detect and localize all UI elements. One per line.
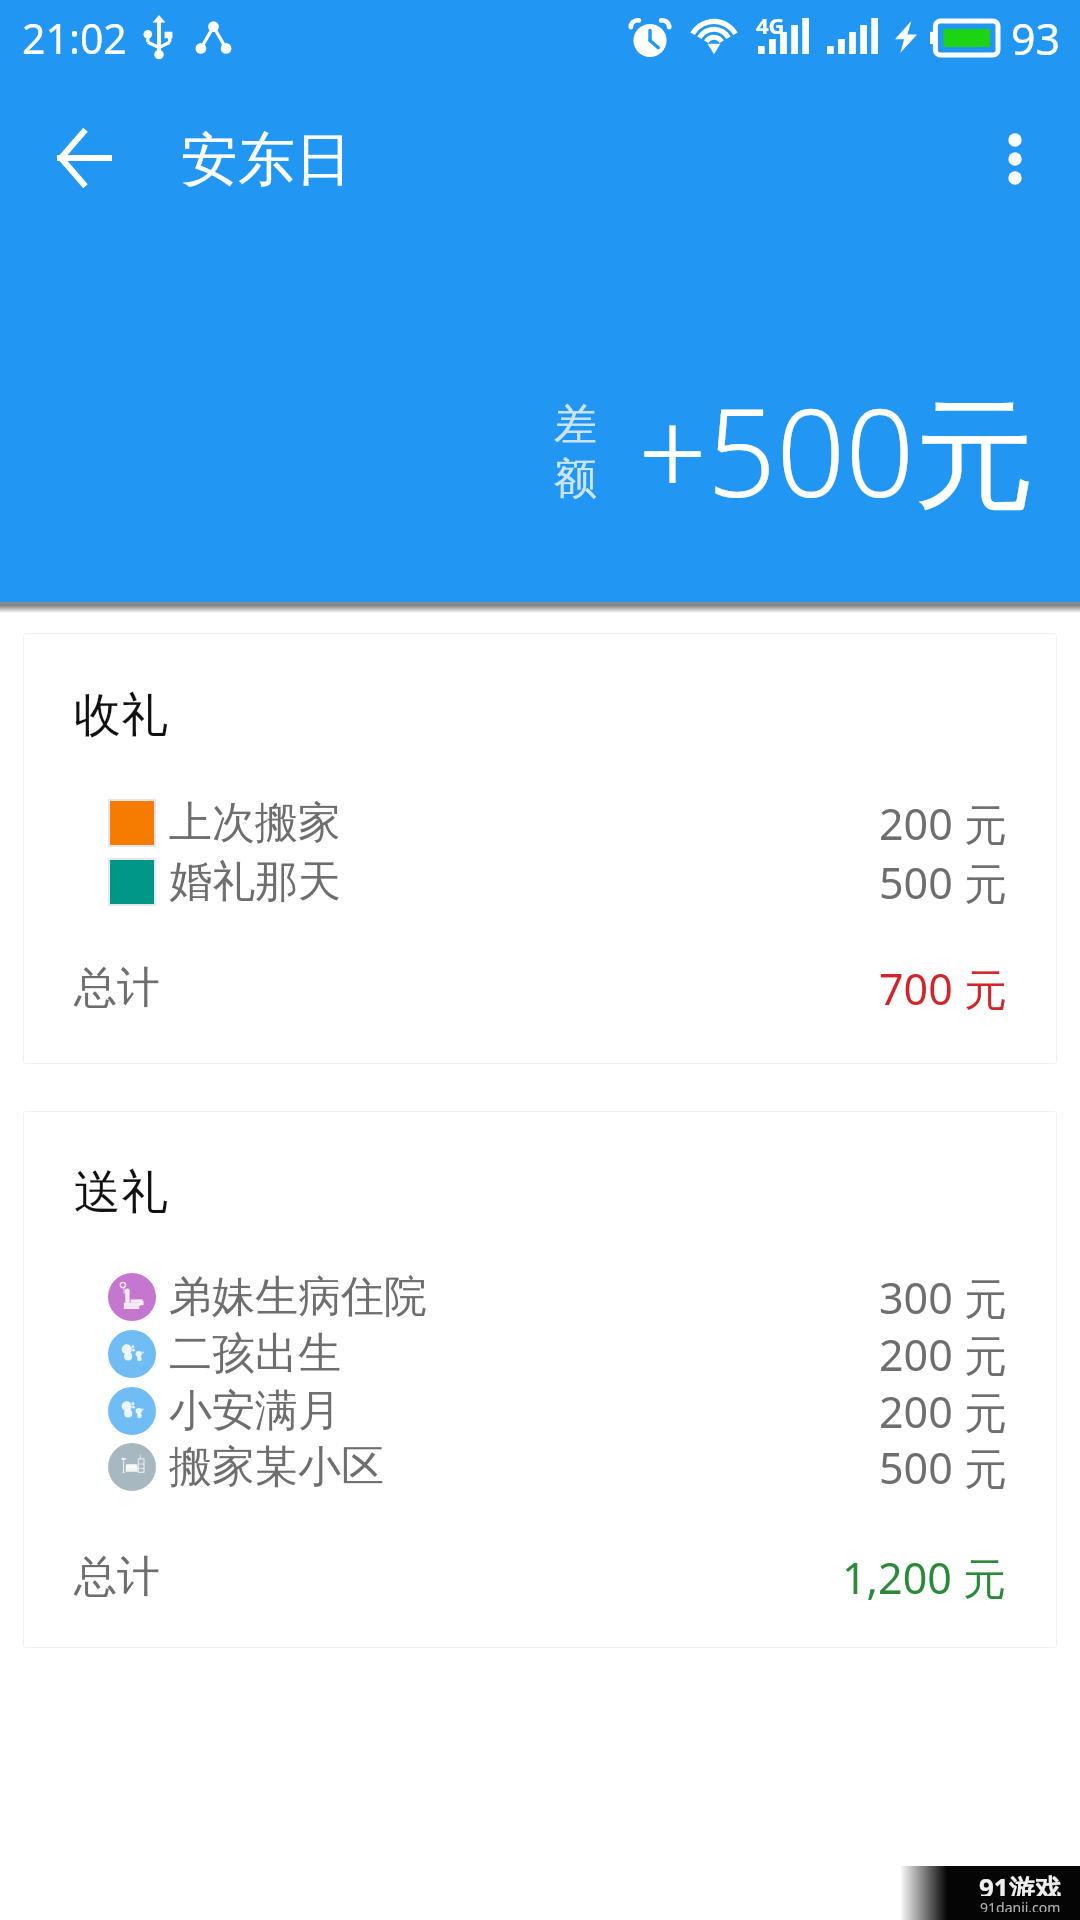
staticText: 总计 <box>74 1550 160 1604</box>
staticText: 200 元 <box>879 1325 1007 1384</box>
staticText: 91游戏 <box>979 1870 1061 1896</box>
staticText: 搬家某小区 <box>169 1440 384 1494</box>
staticText: 700 元 <box>879 959 1007 1018</box>
staticText: 弟妹生病住院 <box>169 1270 427 1324</box>
button[interactable]: 婚礼那天 <box>108 847 1007 917</box>
button[interactable]: Back <box>29 103 139 213</box>
staticText: 21:02 <box>22 10 127 66</box>
staticText: 上次搬家 <box>169 796 341 850</box>
button[interactable]: 总计 <box>74 1542 1007 1612</box>
button[interactable]: 总计 <box>74 953 1007 1023</box>
button[interactable]: More options <box>960 104 1070 214</box>
staticText: 1,200 元 <box>842 1548 1007 1607</box>
staticText: 4G <box>756 10 785 40</box>
staticText: 安东日 <box>181 124 352 196</box>
staticText: 500 元 <box>879 853 1007 912</box>
staticText: 300 元 <box>879 1268 1007 1327</box>
staticText: 婚礼那天 <box>169 855 341 909</box>
staticText: 收礼 <box>74 686 168 745</box>
staticText: 二孩出生 <box>169 1327 341 1381</box>
staticText: 送礼 <box>74 1163 168 1222</box>
staticText: 200 元 <box>879 1382 1007 1441</box>
button[interactable]: 小安满月 <box>108 1376 1007 1446</box>
staticText: 总计 <box>74 961 160 1015</box>
staticText: 500 元 <box>879 1438 1007 1497</box>
staticText: 91danji.com <box>980 1898 1061 1912</box>
button[interactable]: 上次搬家 <box>108 788 1007 858</box>
button[interactable]: 搬家某小区 <box>108 1432 1007 1502</box>
staticText: +500元 <box>638 368 1036 533</box>
button[interactable]: 二孩出生 <box>108 1319 1007 1389</box>
button[interactable] <box>23 633 1057 1064</box>
staticText: 差 <box>554 398 597 452</box>
staticText: 小安满月 <box>169 1384 341 1438</box>
staticText: 额 <box>554 452 597 506</box>
staticText: 93 <box>1011 9 1061 68</box>
staticText: 200 元 <box>879 794 1007 853</box>
button[interactable]: 弟妹生病住院 <box>108 1262 1007 1332</box>
button[interactable] <box>23 1111 1057 1648</box>
